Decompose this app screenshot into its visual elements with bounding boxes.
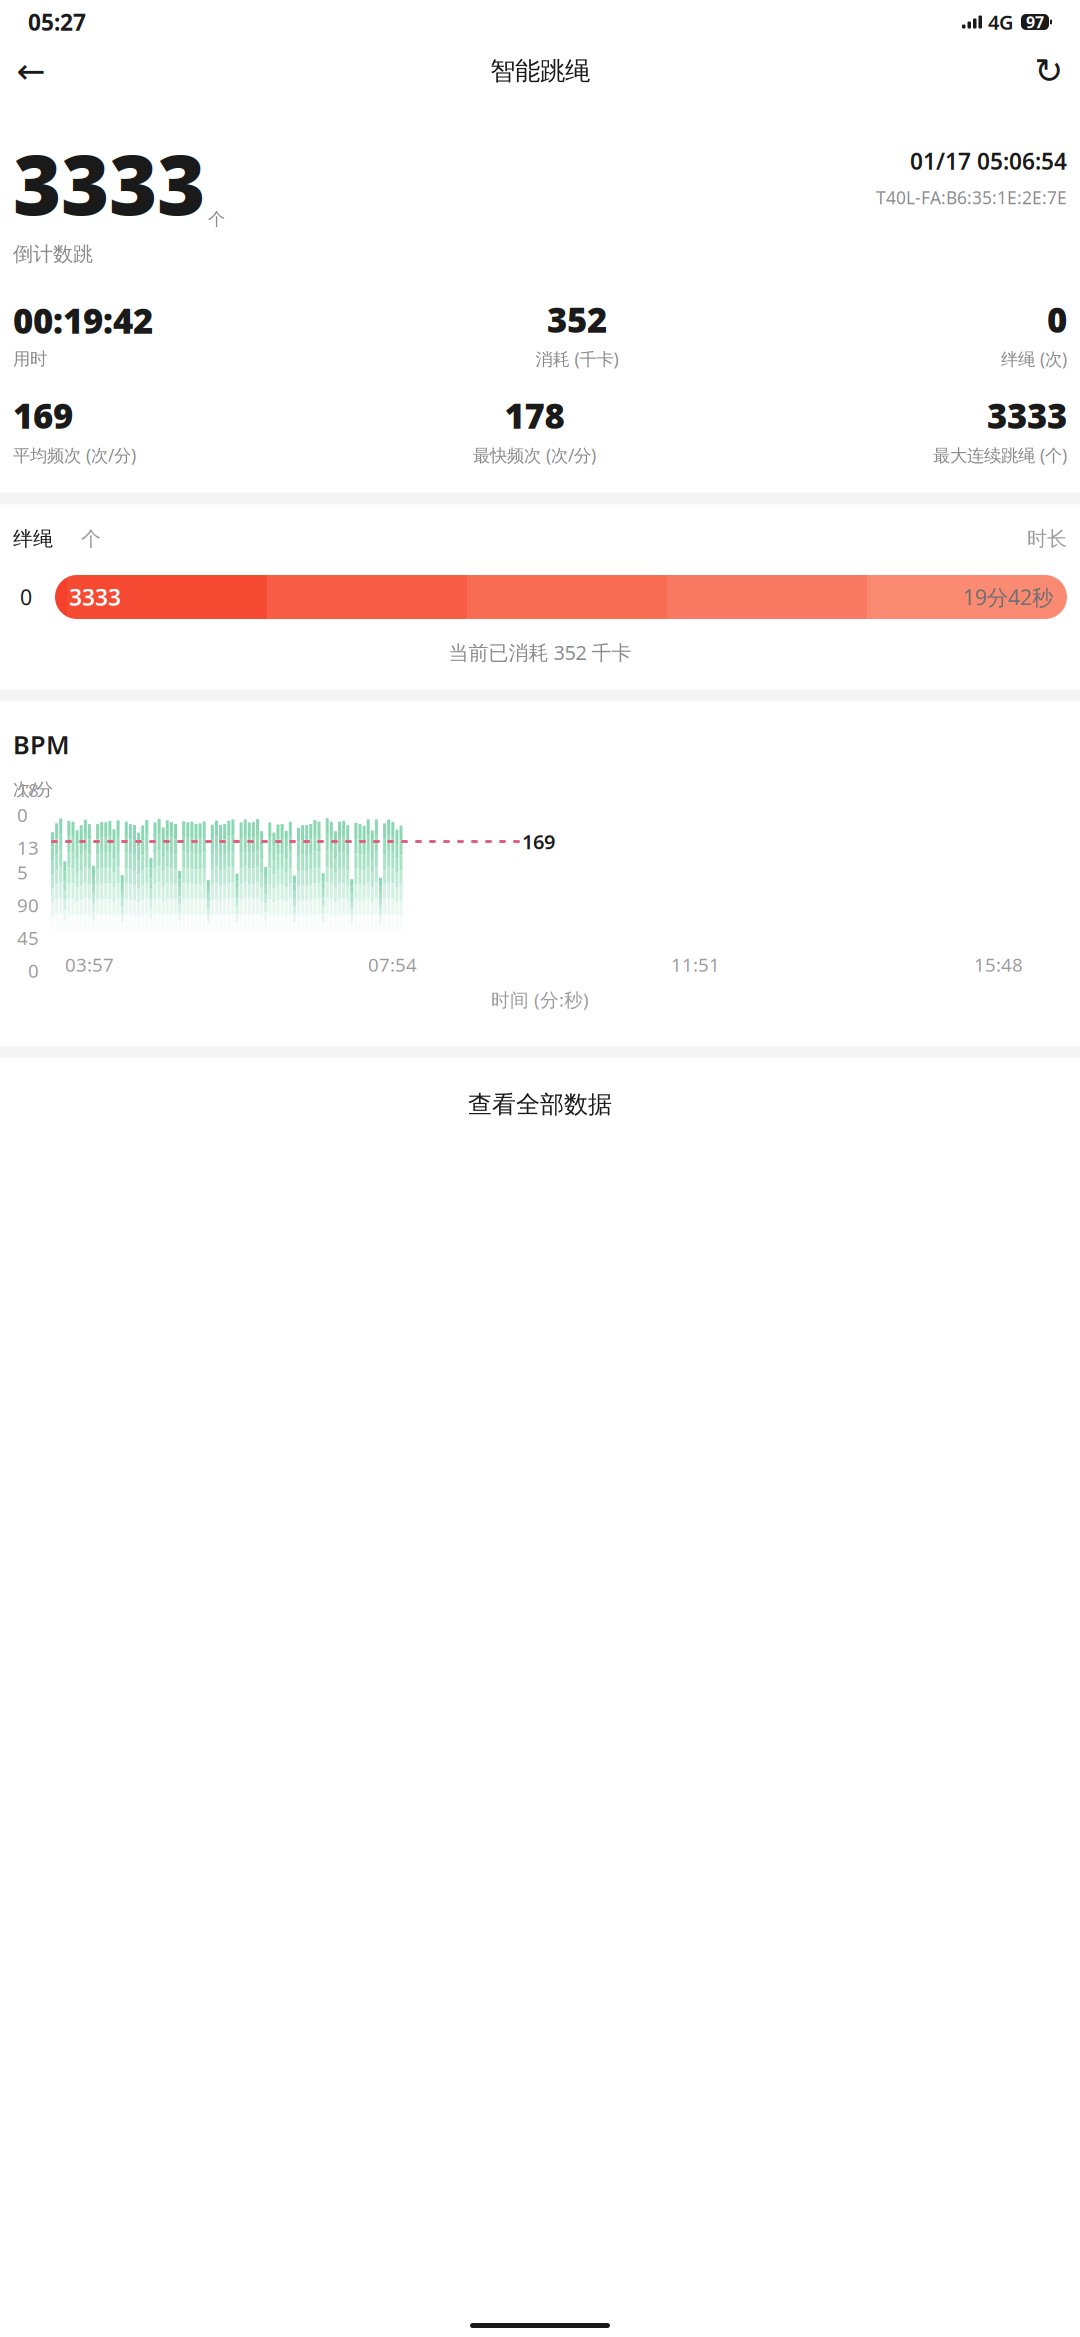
staticText: 当前已消耗 352 千卡 [448, 639, 631, 666]
staticText: 45 [17, 925, 39, 950]
staticText: 0 [1047, 296, 1067, 342]
staticText: 平均频次 (次/分) [13, 443, 136, 466]
button[interactable]: Back [9, 49, 53, 93]
staticText: 3333 [69, 582, 121, 612]
button[interactable]: 查看全部数据 [0, 1070, 1080, 1139]
staticText: 消耗 (千卡) [535, 347, 618, 370]
staticText: 03:57 [65, 952, 114, 977]
staticText: 11:51 [671, 952, 720, 977]
staticText: 05:27 [28, 7, 86, 37]
staticText: 用时 [13, 348, 47, 369]
staticText: 07:54 [368, 952, 417, 977]
staticText: 97 [1026, 11, 1044, 33]
staticText: 178 [504, 392, 564, 438]
staticText: 352 [547, 296, 607, 342]
staticText: 最快频次 (次/分) [473, 443, 596, 466]
staticText: 4G [988, 9, 1014, 35]
staticText: 绊绳 (次) [1001, 347, 1067, 370]
staticText: 时间 (分:秒) [491, 987, 589, 1012]
staticText: 个 [208, 208, 225, 230]
staticText: 19分42秒 [963, 583, 1053, 611]
button[interactable]: Refresh [1027, 49, 1071, 93]
staticText: 倒计数跳 [13, 242, 93, 266]
staticText: 90 [17, 893, 39, 917]
staticText: 01/17 05:06:54 [910, 146, 1067, 176]
staticText: 智能跳绳 [490, 55, 590, 86]
staticText: 3333 [13, 128, 205, 238]
staticText: 3333 [987, 392, 1067, 438]
staticText: ← [16, 51, 45, 91]
staticText: 最大连续跳绳 (个) [933, 443, 1067, 466]
staticText: 15:48 [974, 952, 1023, 977]
staticText: 时长 [1027, 526, 1067, 551]
staticText: 0 [28, 958, 39, 983]
staticText: ↻ [1034, 51, 1063, 91]
staticText: 个 [81, 526, 101, 551]
staticText: 180 [17, 777, 39, 827]
staticText: 135 [17, 835, 39, 885]
staticText: BPM [13, 728, 70, 761]
staticText: 169 [522, 828, 555, 855]
staticText: 绊绳 [13, 526, 53, 551]
staticText: 0 [20, 583, 32, 611]
staticText: 次/分 [13, 777, 53, 800]
staticText: 00:19:42 [13, 297, 153, 343]
staticText: T40L-FA:B6:35:1E:2E:7E [876, 186, 1067, 209]
staticText: 查看全部数据 [468, 1090, 612, 1119]
staticText: 169 [13, 392, 73, 438]
